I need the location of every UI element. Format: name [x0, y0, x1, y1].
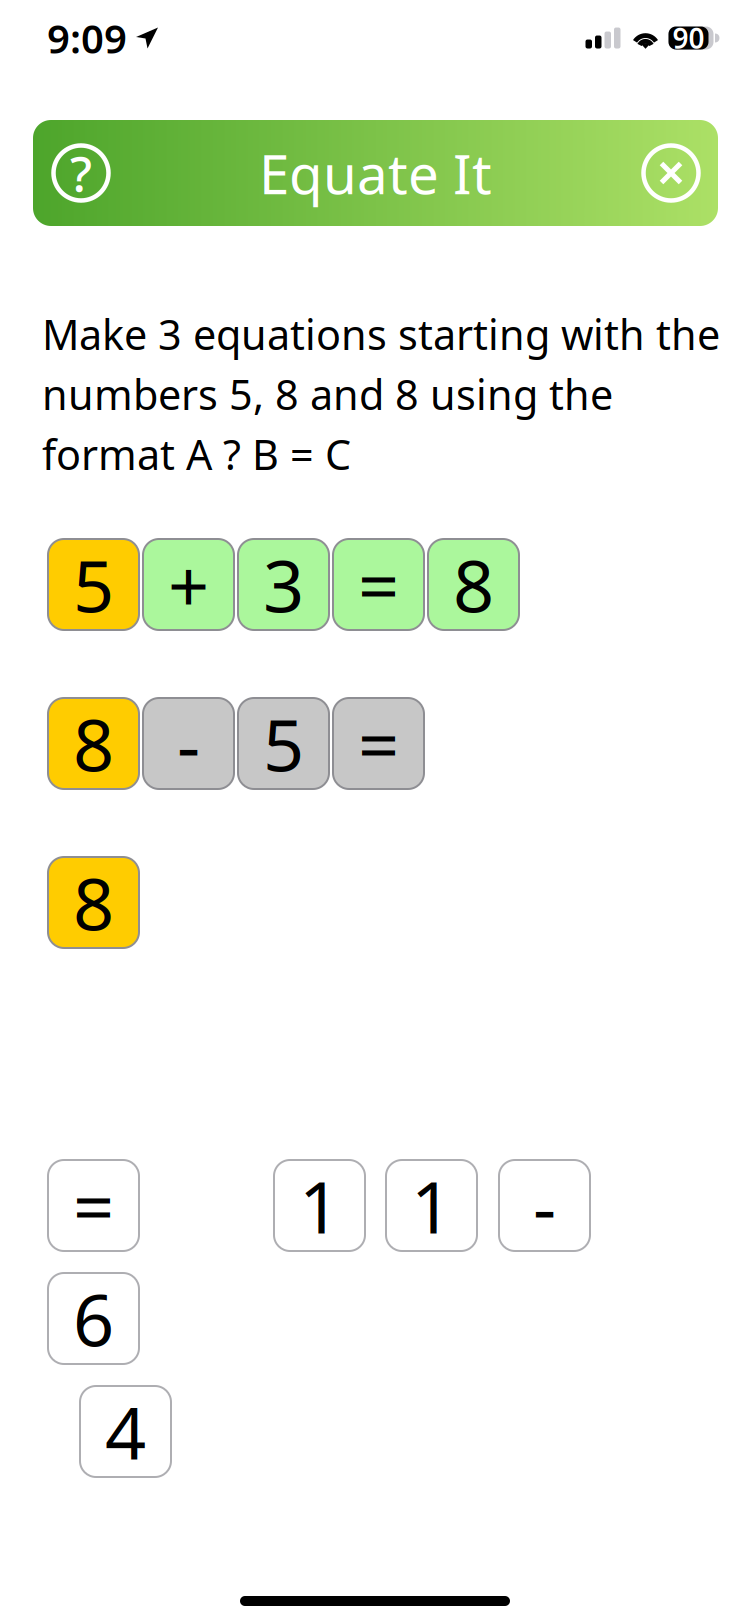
staticText: 1 — [411, 1158, 452, 1253]
staticText: - — [533, 1158, 556, 1253]
button[interactable]: 8 — [428, 539, 519, 630]
staticText: 5 — [73, 537, 114, 632]
staticText: format A ? B = C — [42, 427, 351, 481]
staticText: numbers 5, 8 and 8 using the — [42, 367, 613, 421]
staticText: 4 — [105, 1384, 146, 1479]
staticText: 9:09 — [47, 11, 127, 64]
button[interactable]: = — [48, 1160, 139, 1251]
button[interactable]: 8 — [48, 698, 139, 789]
button[interactable]: Help — [47, 139, 115, 207]
button[interactable]: = — [333, 539, 424, 630]
staticText: = — [73, 1158, 114, 1253]
staticText: + — [168, 537, 209, 632]
button[interactable]: - — [499, 1160, 590, 1251]
button[interactable]: 6 — [48, 1273, 139, 1364]
staticText: 8 — [73, 696, 114, 791]
button[interactable]: 5 — [238, 698, 329, 789]
staticText: 90 — [672, 19, 704, 57]
staticText: 8 — [73, 855, 114, 950]
staticText: ? — [70, 140, 92, 206]
staticText: 8 — [453, 537, 494, 632]
staticText: 6 — [73, 1271, 114, 1366]
button[interactable]: + — [143, 539, 234, 630]
staticText: - — [177, 696, 200, 791]
staticText: = — [358, 696, 399, 791]
staticText: 3 — [263, 537, 304, 632]
button[interactable]: 3 — [238, 539, 329, 630]
staticText: Equate It — [259, 137, 492, 209]
staticText: Make 3 equations starting with the — [42, 307, 720, 361]
staticText: 5 — [263, 696, 304, 791]
staticText: = — [358, 537, 399, 632]
button[interactable]: 8 — [48, 857, 139, 948]
button[interactable]: 1 — [386, 1160, 477, 1251]
staticText: 1 — [299, 1158, 340, 1253]
button[interactable]: 1 — [274, 1160, 365, 1251]
button[interactable]: - — [143, 698, 234, 789]
button[interactable]: 4 — [80, 1386, 171, 1477]
button[interactable]: 5 — [48, 539, 139, 630]
button[interactable]: Close — [637, 139, 705, 207]
button[interactable]: = — [333, 698, 424, 789]
